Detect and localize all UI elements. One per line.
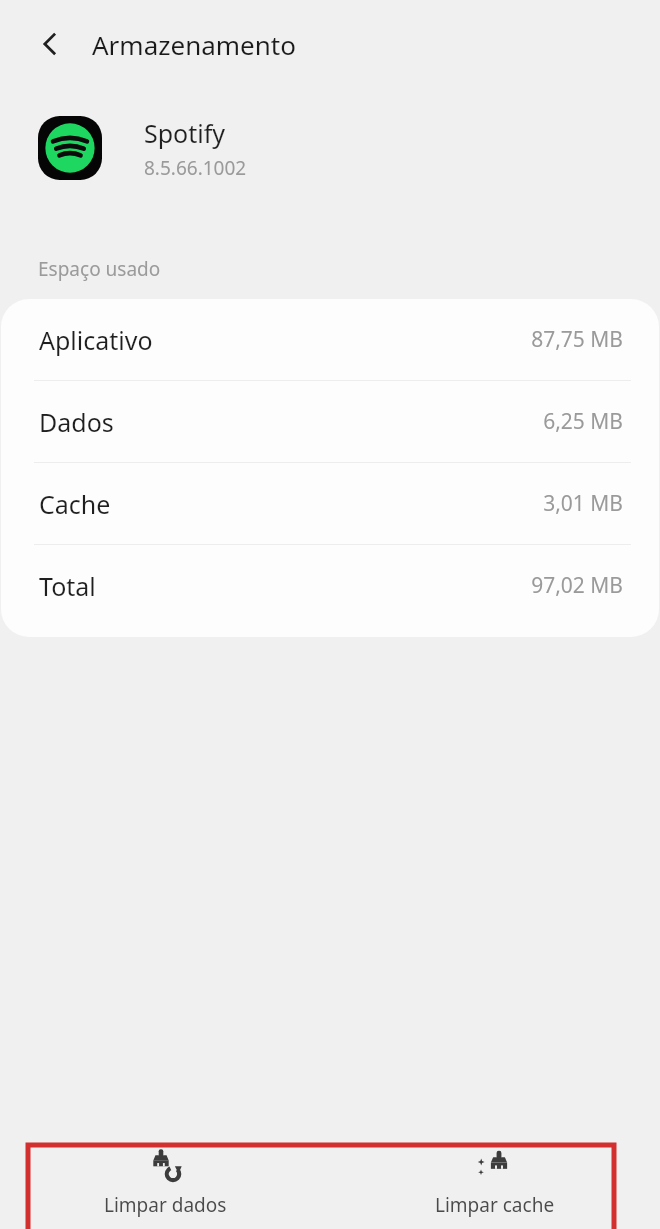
staticText: Armazenamento xyxy=(92,27,296,62)
button[interactable]: Cache xyxy=(1,463,659,544)
button[interactable]: Total xyxy=(1,545,659,626)
staticText: Cache xyxy=(39,487,111,521)
staticText: Dados xyxy=(39,405,114,439)
staticText: Limpar cache xyxy=(435,1192,555,1218)
staticText: Espaço usado xyxy=(38,256,161,282)
staticText: Total xyxy=(39,569,96,603)
staticText: Spotify xyxy=(144,116,226,150)
staticText: 8.5.66.1002 xyxy=(144,155,247,181)
staticText: 97,02 MB xyxy=(531,571,623,600)
staticText: 3,01 MB xyxy=(543,489,623,518)
button[interactable]: Back xyxy=(26,20,74,68)
button[interactable]: Limpar dados xyxy=(0,1135,330,1229)
staticText: Limpar dados xyxy=(104,1192,227,1218)
staticText: 87,75 MB xyxy=(531,325,623,354)
staticText: Aplicativo xyxy=(39,323,153,357)
button[interactable]: Limpar cache xyxy=(330,1135,660,1229)
staticText: 6,25 MB xyxy=(543,407,623,436)
button[interactable]: Aplicativo xyxy=(1,299,659,380)
button[interactable]: Dados xyxy=(1,381,659,462)
